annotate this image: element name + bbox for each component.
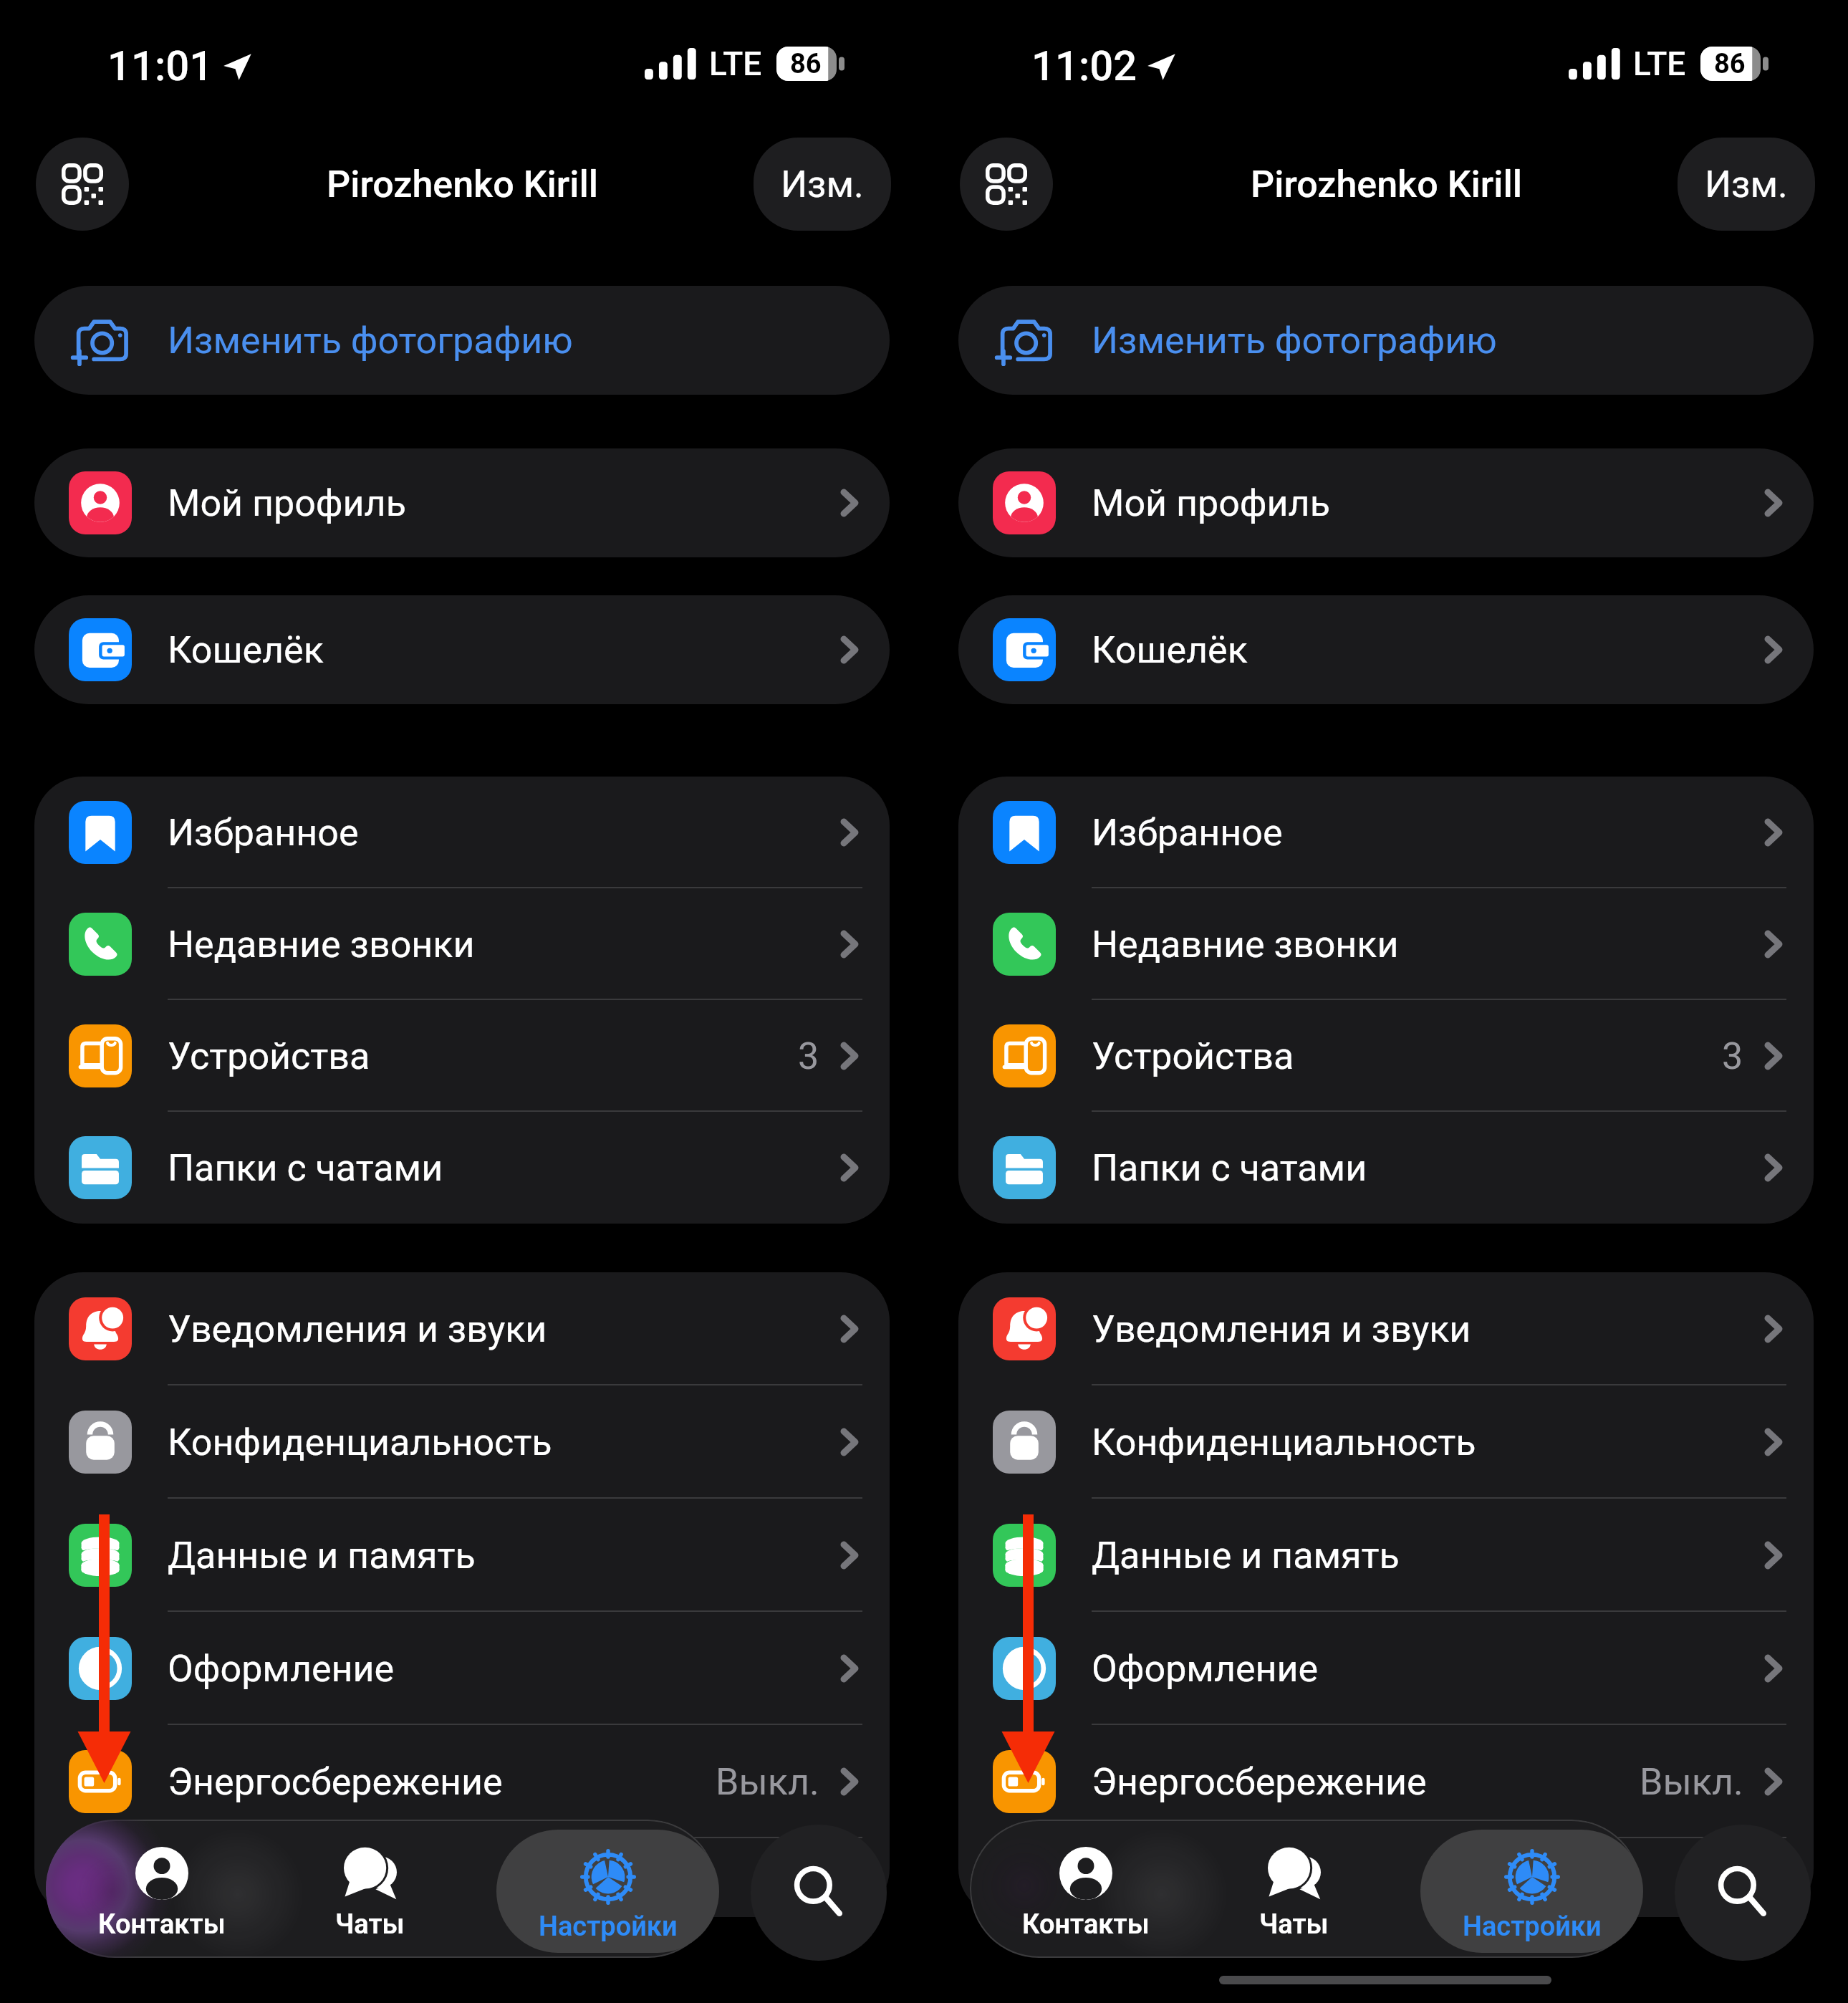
staticText: Недавние звонки [168,923,475,966]
staticText: Pirozhenko Kirill [1251,163,1522,206]
staticText: Изменить фотографию [168,319,573,362]
staticText: Папки с чатами [1092,1146,1367,1190]
button[interactable]: Search [1675,1825,1811,1961]
staticText: 11:02 [1031,42,1137,90]
button[interactable]: Недавние звонки [958,888,1814,1000]
staticText: Контакты [98,1908,226,1941]
button[interactable]: Избранное [958,777,1814,888]
staticText: 3 [798,1034,819,1078]
staticText: Оформление [1092,1647,1319,1691]
staticText: 3 [1722,1034,1743,1078]
staticText: Конфиденциальность [168,1421,552,1464]
button[interactable]: Данные и память [34,1499,890,1612]
staticText: 86 [1714,48,1746,80]
button[interactable]: Изменить фотографию [958,286,1814,395]
button[interactable]: Оформление [34,1612,890,1725]
staticText: Выкл. [716,1760,819,1804]
staticText: Устройства [168,1034,370,1078]
button[interactable]: Энергосбережение [958,1725,1814,1838]
button[interactable]: Мой профиль [958,448,1814,557]
button[interactable]: Мой профиль [34,448,890,557]
button[interactable]: Устройства [958,1000,1814,1112]
button[interactable]: Уведомления и звуки [34,1272,890,1385]
staticText: Недавние звонки [1092,923,1399,966]
button[interactable]: Данные и память [958,1499,1814,1612]
button[interactable]: Рассылки [958,1838,1814,1917]
staticText: Папки с чатами [168,1146,443,1190]
staticText: Изм. [1705,163,1788,206]
staticText: LTE [1633,44,1686,83]
button[interactable]: Настройки [496,1830,719,1953]
staticText: Оформление [168,1647,395,1691]
staticText: Кошелёк [1092,628,1248,672]
button[interactable]: Изм. [754,138,891,231]
staticText: Данные и память [1092,1534,1400,1577]
button[interactable]: Кошелёк [34,595,890,704]
staticText: Уведомления и звуки [1092,1307,1471,1351]
staticText: Конфиденциальность [1092,1421,1476,1464]
staticText: Рассылки [1092,1856,1266,1900]
button[interactable]: QR code [36,138,129,231]
button[interactable]: Контакты [83,1820,241,1958]
staticText: Кошелёк [168,628,324,672]
staticText: Чаты [1259,1908,1329,1941]
staticText: Уведомления и звуки [168,1307,547,1351]
button[interactable]: Чаты [1215,1820,1372,1958]
staticText: Энергосбережение [168,1760,503,1804]
staticText: Чаты [335,1908,405,1941]
button[interactable]: Изм. [1678,138,1815,231]
button[interactable]: Рассылки [34,1838,890,1917]
staticText: LTE [709,44,762,83]
button[interactable]: Устройства [34,1000,890,1112]
staticText: Выкл. [1640,1760,1743,1804]
button[interactable]: Search [751,1825,887,1961]
staticText: Контакты [1022,1908,1150,1941]
staticText: Изм. [781,163,864,206]
button[interactable]: Папки с чатами [958,1112,1814,1224]
staticText: 11:01 [107,42,213,90]
staticText: Настройки [539,1911,678,1943]
button[interactable]: Контакты [1007,1820,1165,1958]
button[interactable]: Изменить фотографию [34,286,890,395]
button[interactable]: Избранное [34,777,890,888]
button[interactable]: Настройки [1420,1830,1643,1953]
staticText: Избранное [1092,811,1283,855]
staticText: Мой профиль [168,481,406,525]
staticText: Избранное [168,811,359,855]
button[interactable]: Чаты [291,1820,448,1958]
staticText: Изменить фотографию [1092,319,1497,362]
staticText: Энергосбережение [1092,1760,1427,1804]
staticText: Устройства [1092,1034,1294,1078]
button[interactable]: Уведомления и звуки [958,1272,1814,1385]
button[interactable]: Папки с чатами [34,1112,890,1224]
button[interactable]: Конфиденциальность [34,1385,890,1499]
staticText: Рассылки [168,1856,342,1900]
button[interactable]: Конфиденциальность [958,1385,1814,1499]
button[interactable]: Кошелёк [958,595,1814,704]
staticText: Настройки [1463,1911,1602,1943]
staticText: Данные и память [168,1534,476,1577]
button[interactable]: Недавние звонки [34,888,890,1000]
button[interactable]: Энергосбережение [34,1725,890,1838]
staticText: Мой профиль [1092,481,1330,525]
staticText: Pirozhenko Kirill [327,163,598,206]
staticText: 86 [790,48,822,80]
button[interactable]: Оформление [958,1612,1814,1725]
button[interactable]: QR code [960,138,1053,231]
